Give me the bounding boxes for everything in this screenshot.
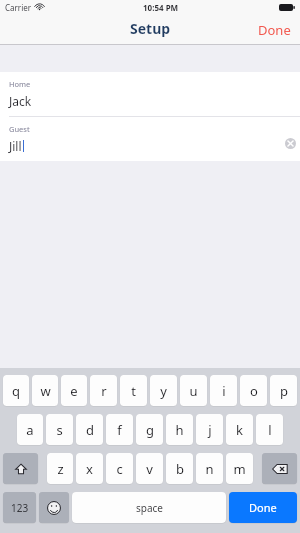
staticText: e: [70, 382, 78, 400]
button[interactable]: Clear text: [281, 134, 300, 153]
button[interactable]: t: [120, 375, 147, 406]
button[interactable]: z: [47, 453, 73, 484]
button[interactable]: l: [256, 414, 283, 445]
staticText: a: [26, 421, 34, 439]
staticText: k: [236, 421, 243, 439]
button[interactable]: f: [106, 414, 133, 445]
staticText: v: [146, 460, 153, 478]
button[interactable]: h: [166, 414, 193, 445]
staticText: z: [57, 460, 64, 478]
button[interactable]: Done: [229, 492, 297, 523]
button[interactable]: a: [17, 414, 43, 445]
staticText: c: [116, 460, 123, 478]
staticText: i: [222, 382, 226, 400]
button[interactable]: p: [270, 375, 297, 406]
button[interactable]: c: [106, 453, 133, 484]
button[interactable]: r: [90, 375, 117, 406]
staticText: t: [131, 382, 136, 400]
staticText: Done: [258, 21, 291, 39]
button[interactable]: q: [3, 375, 29, 406]
button[interactable]: Guest: [0, 117, 300, 161]
staticText: h: [175, 421, 184, 439]
button[interactable]: g: [136, 414, 163, 445]
button[interactable]: i: [210, 375, 237, 406]
button[interactable]: k: [226, 414, 253, 445]
button[interactable]: u: [180, 375, 207, 406]
button[interactable]: d: [76, 414, 103, 445]
button[interactable]: b: [166, 453, 193, 484]
staticText: Home: [9, 79, 31, 89]
staticText: f: [117, 421, 122, 439]
staticText: l: [268, 421, 272, 439]
staticText: m: [233, 460, 246, 478]
staticText: g: [146, 421, 154, 439]
staticText: y: [160, 382, 167, 400]
button[interactable]: Emoji: [39, 492, 69, 523]
button[interactable]: Backspace: [262, 453, 297, 484]
staticText: 123: [11, 501, 29, 515]
button[interactable]: Shift: [3, 453, 38, 484]
button[interactable]: Done: [249, 15, 300, 45]
staticText: Carrier: [5, 2, 32, 13]
staticText: d: [86, 421, 94, 439]
staticText: r: [101, 382, 107, 400]
button[interactable]: Home: [0, 72, 300, 116]
button[interactable]: space: [72, 492, 226, 523]
staticText: 10:54 PM: [143, 2, 179, 13]
staticText: Guest: [9, 124, 30, 134]
button[interactable]: o: [240, 375, 267, 406]
button[interactable]: s: [46, 414, 73, 445]
staticText: w: [40, 382, 51, 400]
staticText: s: [56, 421, 63, 439]
staticText: q: [12, 382, 20, 400]
staticText: Jack: [9, 93, 32, 109]
button[interactable]: 123: [3, 492, 36, 523]
staticText: j: [208, 421, 212, 439]
staticText: space: [136, 501, 163, 515]
staticText: b: [176, 460, 184, 478]
staticText: o: [250, 382, 258, 400]
staticText: n: [205, 460, 214, 478]
staticText: Jill: [9, 138, 22, 154]
staticText: p: [280, 382, 288, 400]
button[interactable]: y: [150, 375, 177, 406]
button[interactable]: n: [196, 453, 223, 484]
staticText: u: [189, 382, 198, 400]
staticText: Done: [249, 500, 277, 515]
button[interactable]: v: [136, 453, 163, 484]
staticText: Setup: [130, 19, 171, 38]
staticText: x: [86, 460, 93, 478]
button[interactable]: j: [196, 414, 223, 445]
button[interactable]: m: [226, 453, 253, 484]
button[interactable]: x: [76, 453, 103, 484]
button[interactable]: w: [32, 375, 58, 406]
button[interactable]: e: [61, 375, 87, 406]
